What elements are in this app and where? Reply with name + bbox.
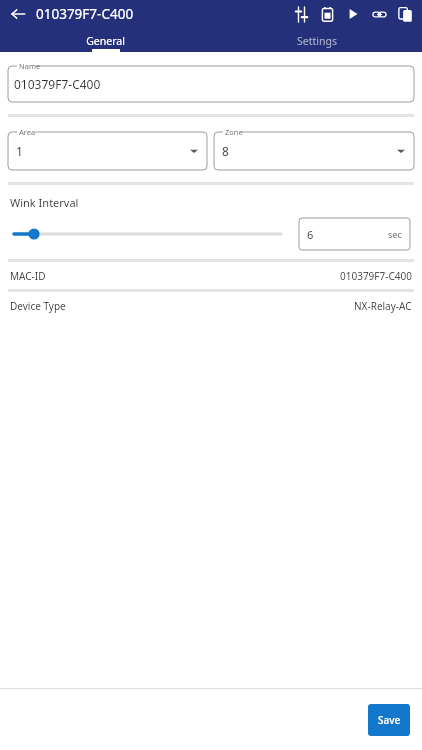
staticText: 1 [16, 143, 23, 159]
staticText: Save [378, 713, 401, 727]
staticText: Settings [297, 34, 337, 48]
staticText: 010379F7-C400 [36, 5, 134, 23]
button[interactable]: MAC-ID [0, 262, 422, 289]
button[interactable]: Copy [392, 1, 418, 27]
button[interactable]: Play [340, 1, 366, 27]
button[interactable]: 6 [299, 218, 410, 250]
button[interactable]: Link [366, 1, 392, 27]
button[interactable]: Save [368, 704, 410, 736]
staticText: Area [19, 127, 36, 137]
button[interactable]: General [0, 28, 211, 52]
button[interactable]: Zone [214, 126, 414, 170]
staticText: 010379F7-C400 [340, 269, 412, 283]
staticText: Device Type [10, 299, 66, 313]
staticText: Wink Interval [10, 195, 79, 210]
button[interactable]: Settings [211, 28, 422, 52]
button[interactable]: Wink interval slider [8, 219, 299, 249]
staticText: 6 [307, 227, 314, 242]
button[interactable]: Back [6, 2, 30, 26]
button[interactable]: Device [314, 1, 340, 27]
staticText: 8 [222, 143, 229, 159]
button[interactable]: Device Type [0, 292, 422, 319]
staticText: NX-Relay-AC [354, 299, 412, 313]
staticText: 010379F7-C400 [14, 76, 101, 92]
staticText: Zone [225, 127, 243, 137]
staticText: sec [388, 228, 402, 240]
staticText: MAC-ID [10, 269, 46, 283]
button[interactable]: Tune [288, 1, 314, 27]
staticText: General [86, 34, 125, 48]
button[interactable]: Name [8, 60, 414, 102]
button[interactable]: Area [8, 126, 207, 170]
staticText: Name [19, 61, 41, 71]
